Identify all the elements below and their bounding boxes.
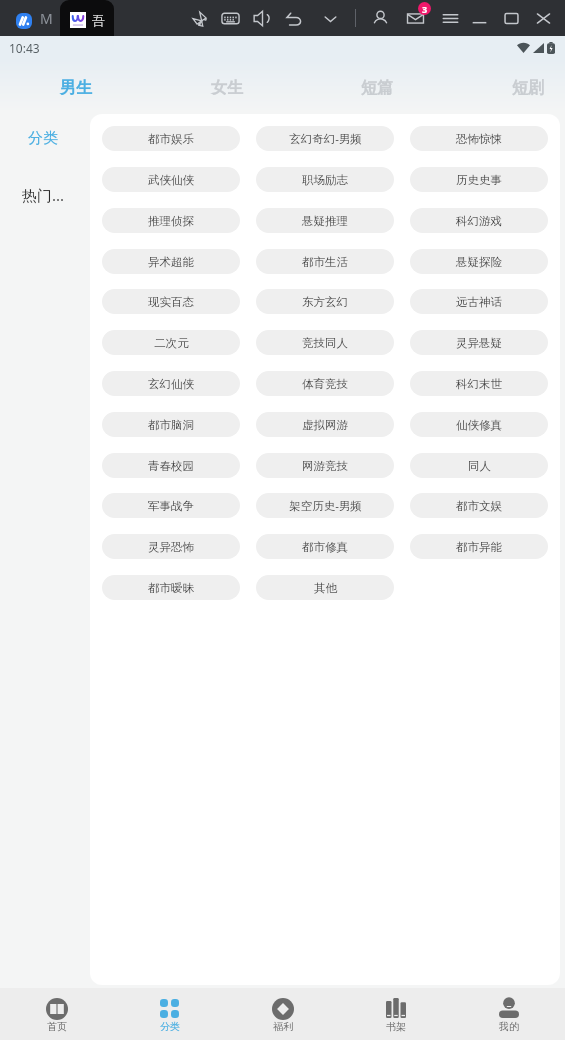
staticText: 10:43 xyxy=(9,40,40,56)
staticText: 都市娱乐 xyxy=(148,132,194,146)
button[interactable]: 玄幻奇幻-男频 xyxy=(256,126,394,151)
button[interactable]: Keyboard xyxy=(218,6,242,30)
button[interactable]: 现实百态 xyxy=(102,289,240,314)
button[interactable]: 灵异悬疑 xyxy=(410,330,548,355)
button[interactable]: 网游竞技 xyxy=(256,453,394,478)
button[interactable]: 短剧 xyxy=(452,60,565,112)
staticText: 书架 xyxy=(386,1020,406,1033)
button[interactable]: 都市暧昧 xyxy=(102,575,240,600)
button[interactable]: 悬疑探险 xyxy=(410,249,548,274)
staticText: 灵异恐怖 xyxy=(148,540,194,554)
staticText: 都市暧昧 xyxy=(148,581,194,595)
button[interactable]: 科幻游戏 xyxy=(410,208,548,233)
staticText: 短篇 xyxy=(361,78,393,98)
button[interactable]: Back xyxy=(282,6,306,30)
staticText: 推理侦探 xyxy=(148,214,194,228)
button[interactable]: 同人 xyxy=(410,453,548,478)
button[interactable]: 二次元 xyxy=(102,330,240,355)
staticText: 3 xyxy=(422,3,428,15)
button[interactable]: 远古神话 xyxy=(410,289,548,314)
staticText: 竞技同人 xyxy=(302,336,348,350)
button[interactable]: 都市脑洞 xyxy=(102,412,240,437)
staticText: 分类 xyxy=(160,1020,180,1033)
button[interactable]: 我的 xyxy=(452,988,565,1040)
button[interactable]: 都市娱乐 xyxy=(102,126,240,151)
staticText: 首页 xyxy=(47,1020,67,1033)
staticText: 悬疑探险 xyxy=(456,255,502,269)
button[interactable]: 都市异能 xyxy=(410,534,548,559)
staticText: 吾 xyxy=(92,12,105,28)
staticText: 科幻末世 xyxy=(456,377,502,391)
button[interactable]: 都市文娱 xyxy=(410,493,548,518)
staticText: 玄幻仙侠 xyxy=(148,377,194,391)
button[interactable]: 青春校园 xyxy=(102,453,240,478)
staticText: 灵异悬疑 xyxy=(456,336,502,350)
button[interactable]: Minimize xyxy=(467,6,491,30)
button[interactable]: 女生 xyxy=(151,60,302,112)
button[interactable]: 架空历史-男频 xyxy=(256,493,394,518)
staticText: 都市文娱 xyxy=(456,499,502,513)
staticText: 分类 xyxy=(28,129,58,148)
staticText: M xyxy=(40,9,53,28)
staticText: 仙侠修真 xyxy=(456,418,502,432)
staticText: 都市生活 xyxy=(302,255,348,269)
button[interactable]: 武侠仙侠 xyxy=(102,167,240,192)
staticText: 职场励志 xyxy=(302,173,348,187)
button[interactable]: Maximize xyxy=(499,6,523,30)
staticText: 虚拟网游 xyxy=(302,418,348,432)
button[interactable]: Theme xyxy=(188,6,212,30)
button[interactable]: 军事战争 xyxy=(102,493,240,518)
staticText: 二次元 xyxy=(154,336,189,350)
button[interactable]: 书架 xyxy=(339,988,452,1040)
button[interactable]: 虚拟网游 xyxy=(256,412,394,437)
button[interactable]: Close xyxy=(531,6,555,30)
button[interactable]: 玄幻仙侠 xyxy=(102,371,240,396)
button[interactable]: 科幻末世 xyxy=(410,371,548,396)
button[interactable]: 热门... xyxy=(0,177,90,213)
staticText: 现实百态 xyxy=(148,295,194,309)
staticText: 悬疑推理 xyxy=(302,214,348,228)
staticText: 东方玄幻 xyxy=(302,295,348,309)
button[interactable]: 历史史事 xyxy=(410,167,548,192)
button[interactable]: 异术超能 xyxy=(102,249,240,274)
button[interactable]: Menu xyxy=(438,6,462,30)
staticText: 我的 xyxy=(499,1020,519,1033)
staticText: 架空历史-男频 xyxy=(289,498,362,514)
staticText: 军事战争 xyxy=(148,499,194,513)
button[interactable]: 体育竞技 xyxy=(256,371,394,396)
staticText: 都市脑洞 xyxy=(148,418,194,432)
button[interactable]: 竞技同人 xyxy=(256,330,394,355)
button[interactable]: 首页 xyxy=(0,988,113,1040)
button[interactable]: 分类 xyxy=(113,988,226,1040)
button[interactable]: 职场励志 xyxy=(256,167,394,192)
staticText: 都市修真 xyxy=(302,540,348,554)
button[interactable]: 其他 xyxy=(256,575,394,600)
button[interactable]: 都市修真 xyxy=(256,534,394,559)
button[interactable]: 都市生活 xyxy=(256,249,394,274)
staticText: 武侠仙侠 xyxy=(148,173,194,187)
button[interactable]: Volume xyxy=(250,6,274,30)
button[interactable]: 短篇 xyxy=(301,60,452,112)
staticText: 异术超能 xyxy=(148,255,194,269)
button[interactable]: 灵异恐怖 xyxy=(102,534,240,559)
button[interactable]: 恐怖惊悚 xyxy=(410,126,548,151)
staticText: 男生 xyxy=(60,78,92,98)
button[interactable]: 悬疑推理 xyxy=(256,208,394,233)
button[interactable]: 男生 xyxy=(0,60,151,112)
button[interactable]: 吾 xyxy=(60,0,114,36)
button[interactable]: 福利 xyxy=(226,988,339,1040)
button[interactable]: 仙侠修真 xyxy=(410,412,548,437)
button[interactable]: More xyxy=(318,6,342,30)
button[interactable]: 分类 xyxy=(0,120,90,156)
button[interactable]: 推理侦探 xyxy=(102,208,240,233)
staticText: 都市异能 xyxy=(456,540,502,554)
staticText: 短剧 xyxy=(512,78,544,98)
staticText: 远古神话 xyxy=(456,295,502,309)
button[interactable]: Account xyxy=(368,6,392,30)
staticText: 同人 xyxy=(468,459,491,473)
staticText: 恐怖惊悚 xyxy=(456,132,502,146)
button[interactable]: 东方玄幻 xyxy=(256,289,394,314)
button[interactable]: Messages xyxy=(403,6,427,30)
staticText: 历史史事 xyxy=(456,173,502,187)
staticText: 科幻游戏 xyxy=(456,214,502,228)
